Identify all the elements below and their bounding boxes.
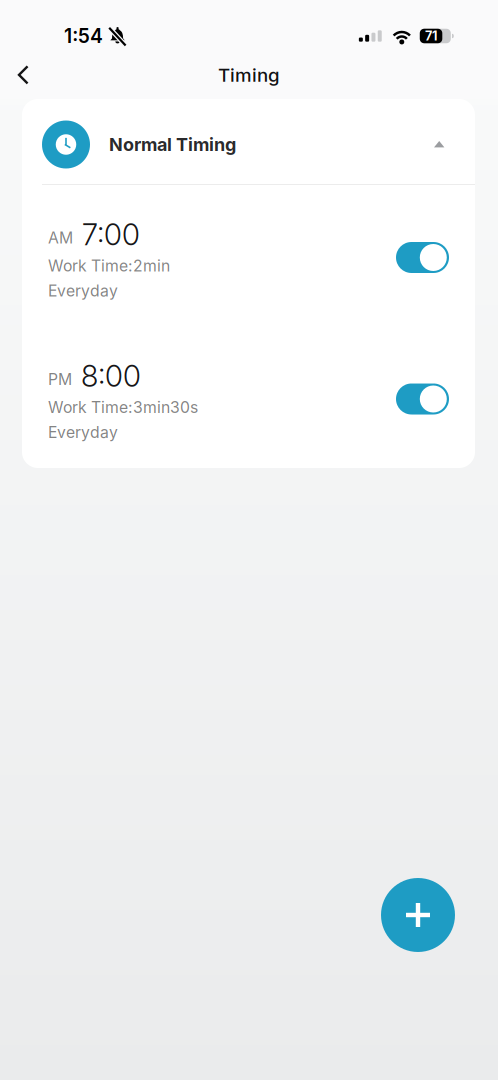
staticText: PM [48,370,72,389]
staticText: 1:54 [64,24,103,48]
button[interactable]: Toggle PM 8:00 alarm [396,383,449,414]
staticText: 71 [425,28,437,44]
button[interactable]: Toggle AM 7:00 alarm [396,242,449,273]
staticText: Work Time:2min [48,256,170,275]
staticText: Timing [218,64,280,86]
staticText: Everyday [48,281,118,300]
staticText: Work Time:3min30s [48,398,198,417]
button[interactable]: Back [0,60,46,90]
button[interactable]: Normal Timing [22,99,475,184]
staticText: 7:00 [82,217,140,252]
staticText: AM [48,228,73,247]
staticText: 8:00 [81,358,141,394]
staticText: Everyday [48,423,118,442]
button[interactable]: Add timing [381,878,455,952]
staticText: Normal Timing [109,134,236,155]
